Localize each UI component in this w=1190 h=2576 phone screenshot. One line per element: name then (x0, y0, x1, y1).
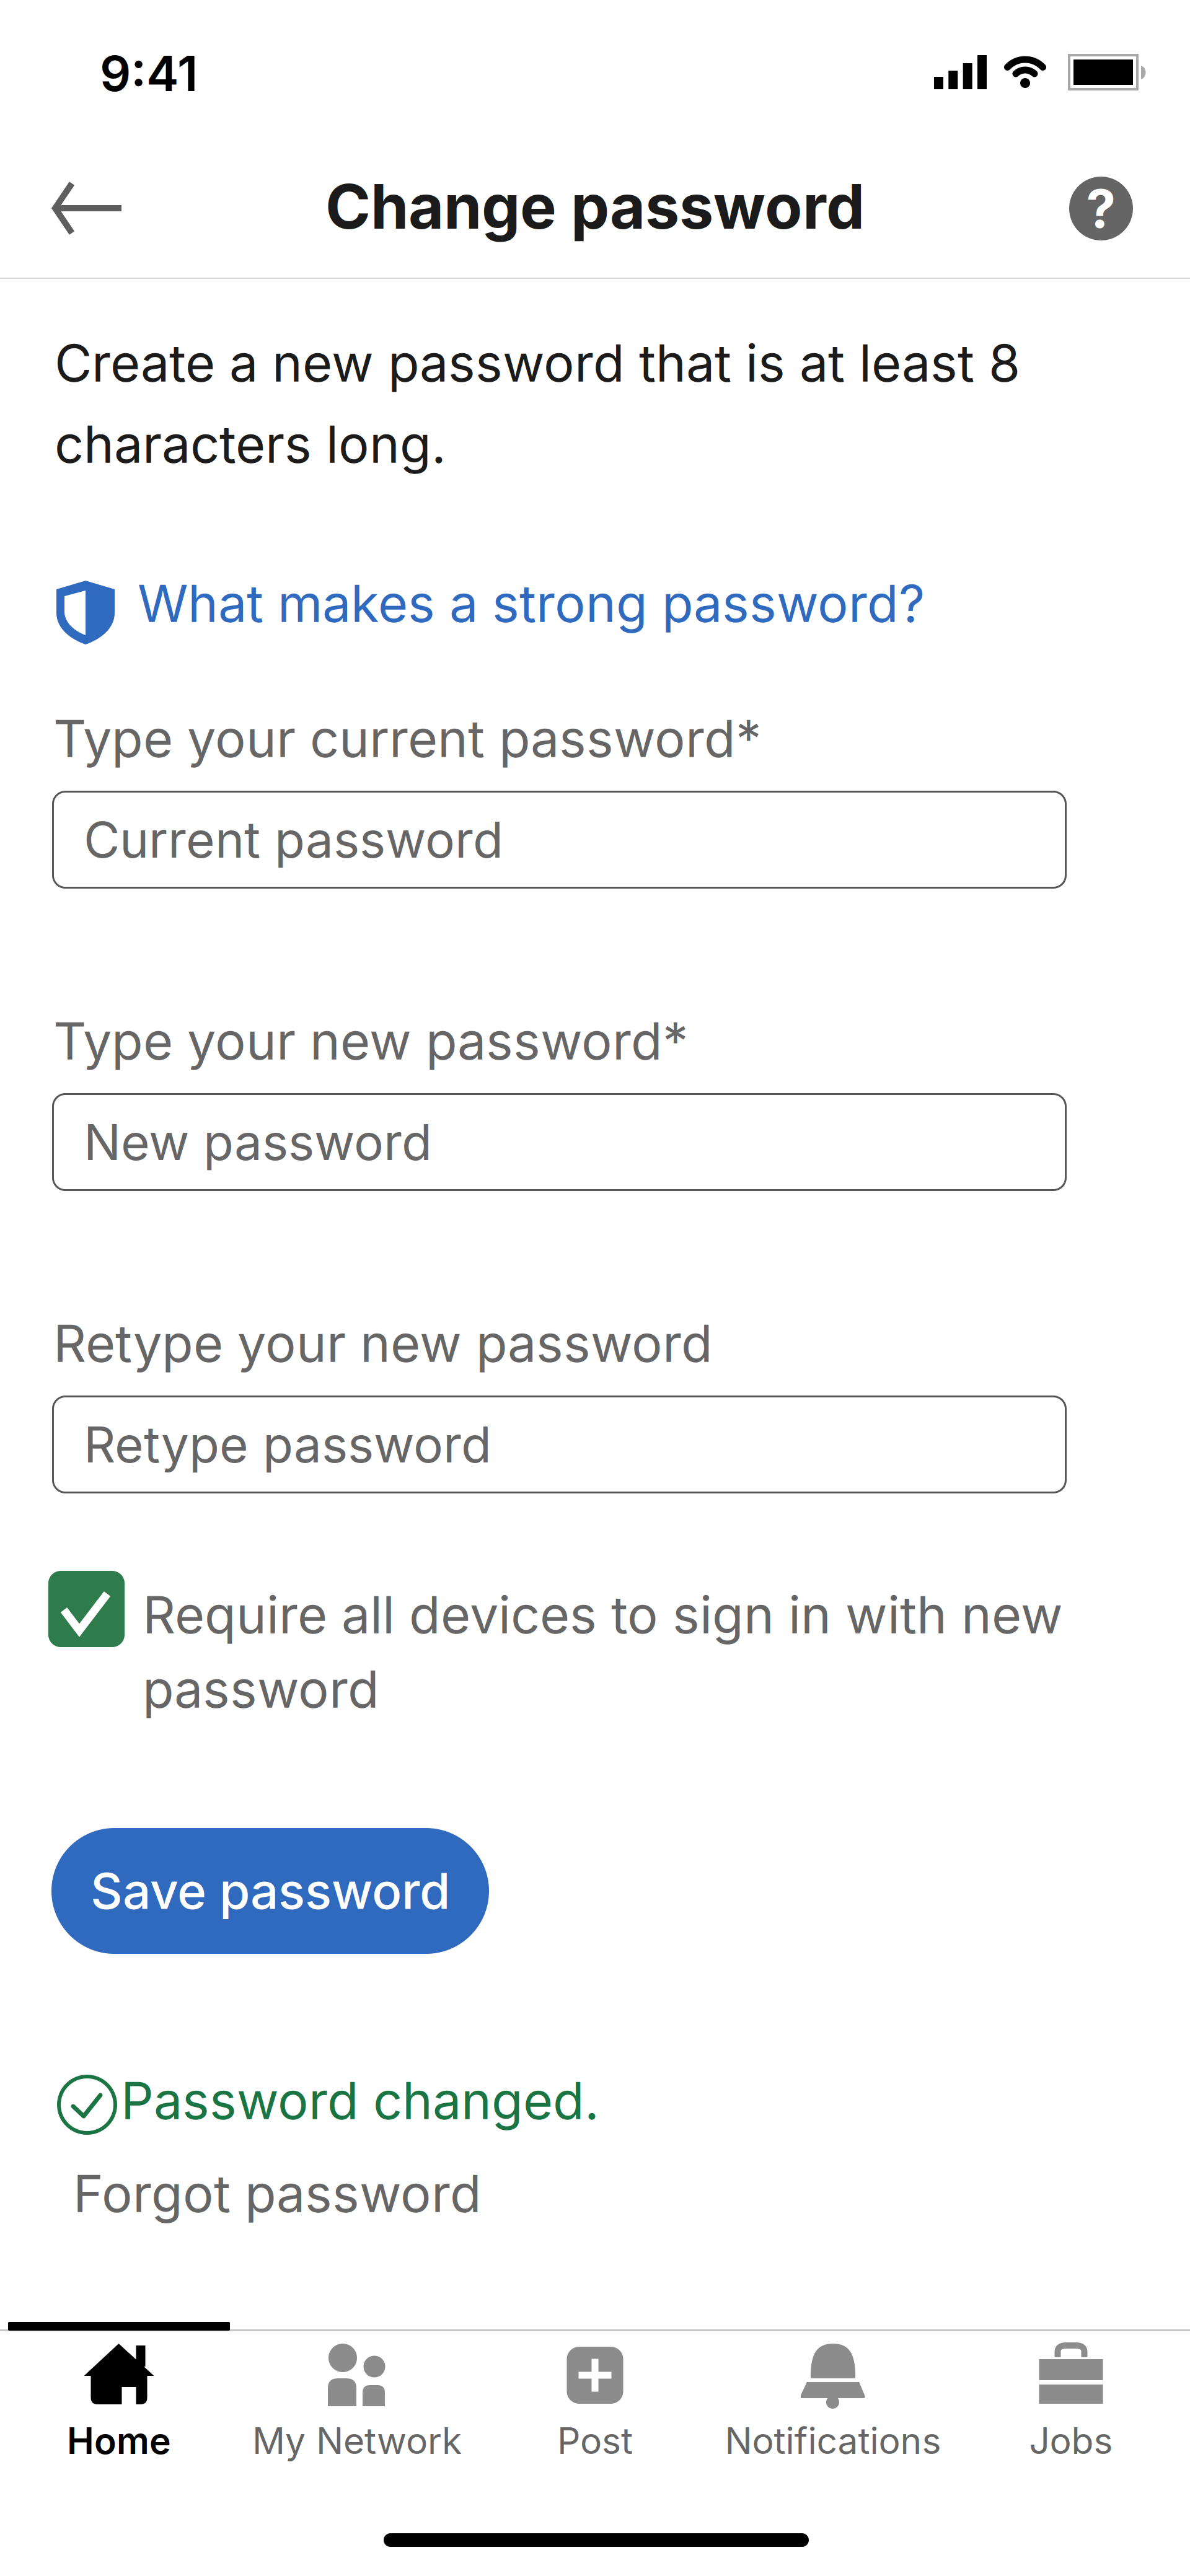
button[interactable]: Jobs (952, 2331, 1190, 2480)
staticText: Forgot password (73, 2163, 482, 2224)
staticText: Password changed. (121, 2070, 599, 2131)
staticText: What makes a strong password? (138, 573, 925, 634)
staticText: characters long. (55, 414, 446, 474)
button[interactable]: Retype password (52, 1396, 1067, 1493)
staticText: Type your current password* (53, 708, 761, 769)
staticText: 9:41 (100, 45, 198, 102)
button[interactable]: Help (1069, 177, 1133, 240)
staticText: Retype your new password (53, 1313, 713, 1374)
staticText: Post (557, 2419, 633, 2462)
staticText: Jobs (1029, 2419, 1113, 2462)
button[interactable]: Post (476, 2331, 714, 2480)
button[interactable]: New password (52, 1093, 1067, 1191)
staticText: password (143, 1659, 379, 1719)
staticText: Require all devices to sign in with new (143, 1585, 1063, 1645)
button[interactable]: Home (0, 2331, 238, 2480)
staticText: Current password (84, 810, 503, 869)
button[interactable]: My Network (238, 2331, 476, 2480)
button[interactable]: Require all devices to sign in with new (48, 1571, 1065, 1723)
staticText: Home (67, 2419, 171, 2462)
staticText: Create a new password that is at least 8 (55, 333, 1020, 393)
button[interactable]: Save password (51, 1828, 489, 1954)
staticText: Save password (90, 1862, 450, 1920)
staticText: Retype password (84, 1415, 491, 1474)
staticText: Change password (325, 170, 865, 243)
staticText: Type your new password* (53, 1011, 688, 1071)
staticText: ? (1086, 177, 1116, 240)
staticText: New password (84, 1113, 432, 1171)
button[interactable]: Notifications (714, 2331, 952, 2480)
button[interactable]: What makes a strong password? (138, 573, 925, 634)
button[interactable]: Forgot password (73, 2163, 482, 2224)
staticText: My Network (252, 2419, 462, 2462)
staticText: Notifications (725, 2419, 941, 2462)
button[interactable]: Current password (52, 791, 1067, 889)
